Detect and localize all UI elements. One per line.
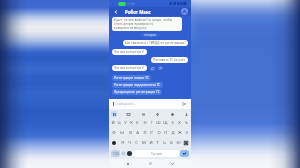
button[interactable]: Я	[118, 138, 126, 148]
button[interactable]: ?123	[111, 150, 120, 157]
staticText: Я	[121, 140, 124, 146]
staticText: Н	[143, 120, 147, 126]
staticText: Г	[150, 120, 153, 126]
button[interactable]: Поставить ТС на учёт	[151, 57, 188, 63]
staticText: Щ	[163, 120, 168, 126]
button[interactable]: К	[128, 118, 134, 128]
staticText: М	[142, 140, 146, 146]
button[interactable]: Clipboard	[111, 111, 117, 117]
staticText: Ъ	[185, 120, 188, 126]
staticText: Регистрация подержанного ТС	[114, 83, 161, 87]
button[interactable]: Й	[110, 118, 116, 128]
button[interactable]: Backspace	[182, 138, 190, 148]
staticText: В	[129, 130, 132, 136]
button[interactable]: Ж	[176, 128, 183, 138]
staticText: 13:46	[127, 2, 136, 6]
staticText: Ф	[112, 130, 116, 136]
staticText: И	[149, 140, 153, 146]
button[interactable]: Home	[147, 160, 154, 167]
staticText: Б	[170, 140, 173, 146]
button[interactable]: Like	[150, 66, 155, 71]
staticText: П	[143, 130, 147, 136]
button[interactable]: Ф	[110, 128, 118, 138]
staticText: ?123	[113, 152, 119, 156]
staticText: Будет, но она важная! Со среды, чтобы оп…	[114, 18, 173, 30]
staticText: Л	[164, 130, 167, 136]
button[interactable]: А	[134, 128, 141, 138]
button[interactable]: Д	[169, 128, 176, 138]
button[interactable]: Будет, но она важная! Со среды, чтобы оп…	[112, 17, 182, 31]
button[interactable]: Back	[112, 8, 119, 15]
button[interactable]: О	[155, 128, 162, 138]
button[interactable]: Send	[181, 101, 187, 107]
button[interactable]: Profile	[181, 8, 188, 15]
button[interactable]: С	[133, 138, 140, 148]
button[interactable]: Ы	[118, 128, 126, 138]
staticText: Й	[111, 120, 115, 126]
button[interactable]: Л	[162, 128, 169, 138]
button[interactable]: Keyboard tool 1	[125, 111, 131, 117]
button[interactable]: Dislike	[158, 66, 163, 71]
button[interactable]: Recents	[124, 160, 131, 167]
staticText: О	[157, 130, 161, 136]
staticText: Ц	[117, 120, 121, 126]
button[interactable]: Э	[183, 128, 190, 138]
button[interactable]: Регистрация нового ТС	[112, 75, 151, 81]
button[interactable]: У	[122, 118, 128, 128]
button[interactable]: Change language	[121, 151, 126, 156]
button[interactable]: М	[140, 138, 147, 148]
staticText: К	[130, 120, 133, 126]
staticText: Что вас интересует?	[114, 50, 145, 54]
button[interactable]: Ч	[126, 138, 133, 148]
staticText: Что вас интересует?	[114, 66, 145, 70]
staticText: Ч	[128, 140, 131, 146]
button[interactable]: Ь	[161, 138, 168, 148]
button[interactable]: Н	[141, 118, 148, 128]
button[interactable]: Ъ	[183, 118, 190, 128]
button[interactable]: Ш	[155, 118, 162, 128]
staticText: Сообщение...	[115, 102, 136, 106]
staticText: сегодня	[144, 33, 156, 37]
staticText: Р	[150, 130, 153, 136]
button[interactable]: Back	[169, 160, 176, 167]
button[interactable]: Т	[154, 138, 161, 148]
button[interactable]: Е	[134, 118, 141, 128]
button[interactable]: Keyboard tool 3	[154, 111, 160, 117]
staticText: Д	[171, 130, 175, 136]
button[interactable]: Прекращение регистрации ТС	[112, 89, 162, 95]
button[interactable]: Ц	[116, 118, 122, 128]
staticText: Поставить ТС на учёт	[153, 58, 186, 62]
button[interactable]: Регистрация подержанного ТС	[112, 82, 163, 88]
button[interactable]: Как связаться с ГИБДД по регистрации?	[123, 40, 188, 46]
button[interactable]: Ю	[175, 138, 182, 148]
button[interactable]: Shift	[110, 138, 118, 148]
staticText: Е	[136, 120, 139, 126]
button[interactable]: Keyboard tool 2	[140, 111, 146, 117]
button[interactable]: И	[147, 138, 154, 148]
button[interactable]: Что вас интересует?	[112, 49, 147, 55]
button[interactable]: Emoji	[127, 151, 132, 156]
button[interactable]: Б	[168, 138, 175, 148]
staticText: Регистрация нового ТС	[114, 76, 149, 80]
button[interactable]: Щ	[162, 118, 169, 128]
button[interactable]: Г	[148, 118, 155, 128]
button[interactable]: сегодня	[141, 33, 159, 37]
staticText: Как связаться с ГИБДД по регистрации?	[125, 41, 186, 45]
staticText: Робот Макс	[125, 9, 151, 15]
staticText: Русский	[151, 152, 162, 156]
staticText: Ж	[178, 130, 182, 136]
button[interactable]: В	[126, 128, 134, 138]
staticText: Ш	[156, 120, 161, 126]
button[interactable]: З	[169, 118, 176, 128]
staticText: С	[135, 140, 138, 146]
staticText: Ю	[176, 140, 181, 146]
staticText: Э	[185, 130, 188, 136]
button[interactable]: П	[141, 128, 148, 138]
button[interactable]: Р	[148, 128, 155, 138]
button[interactable]: Что вас интересует?	[112, 65, 147, 71]
button[interactable]: Русский	[133, 150, 179, 157]
button[interactable]: Enter	[180, 150, 189, 157]
button[interactable]: Keyboard tool 5	[183, 111, 189, 117]
button[interactable]: Keyboard tool 4	[169, 111, 175, 117]
button[interactable]: Х	[176, 118, 183, 128]
